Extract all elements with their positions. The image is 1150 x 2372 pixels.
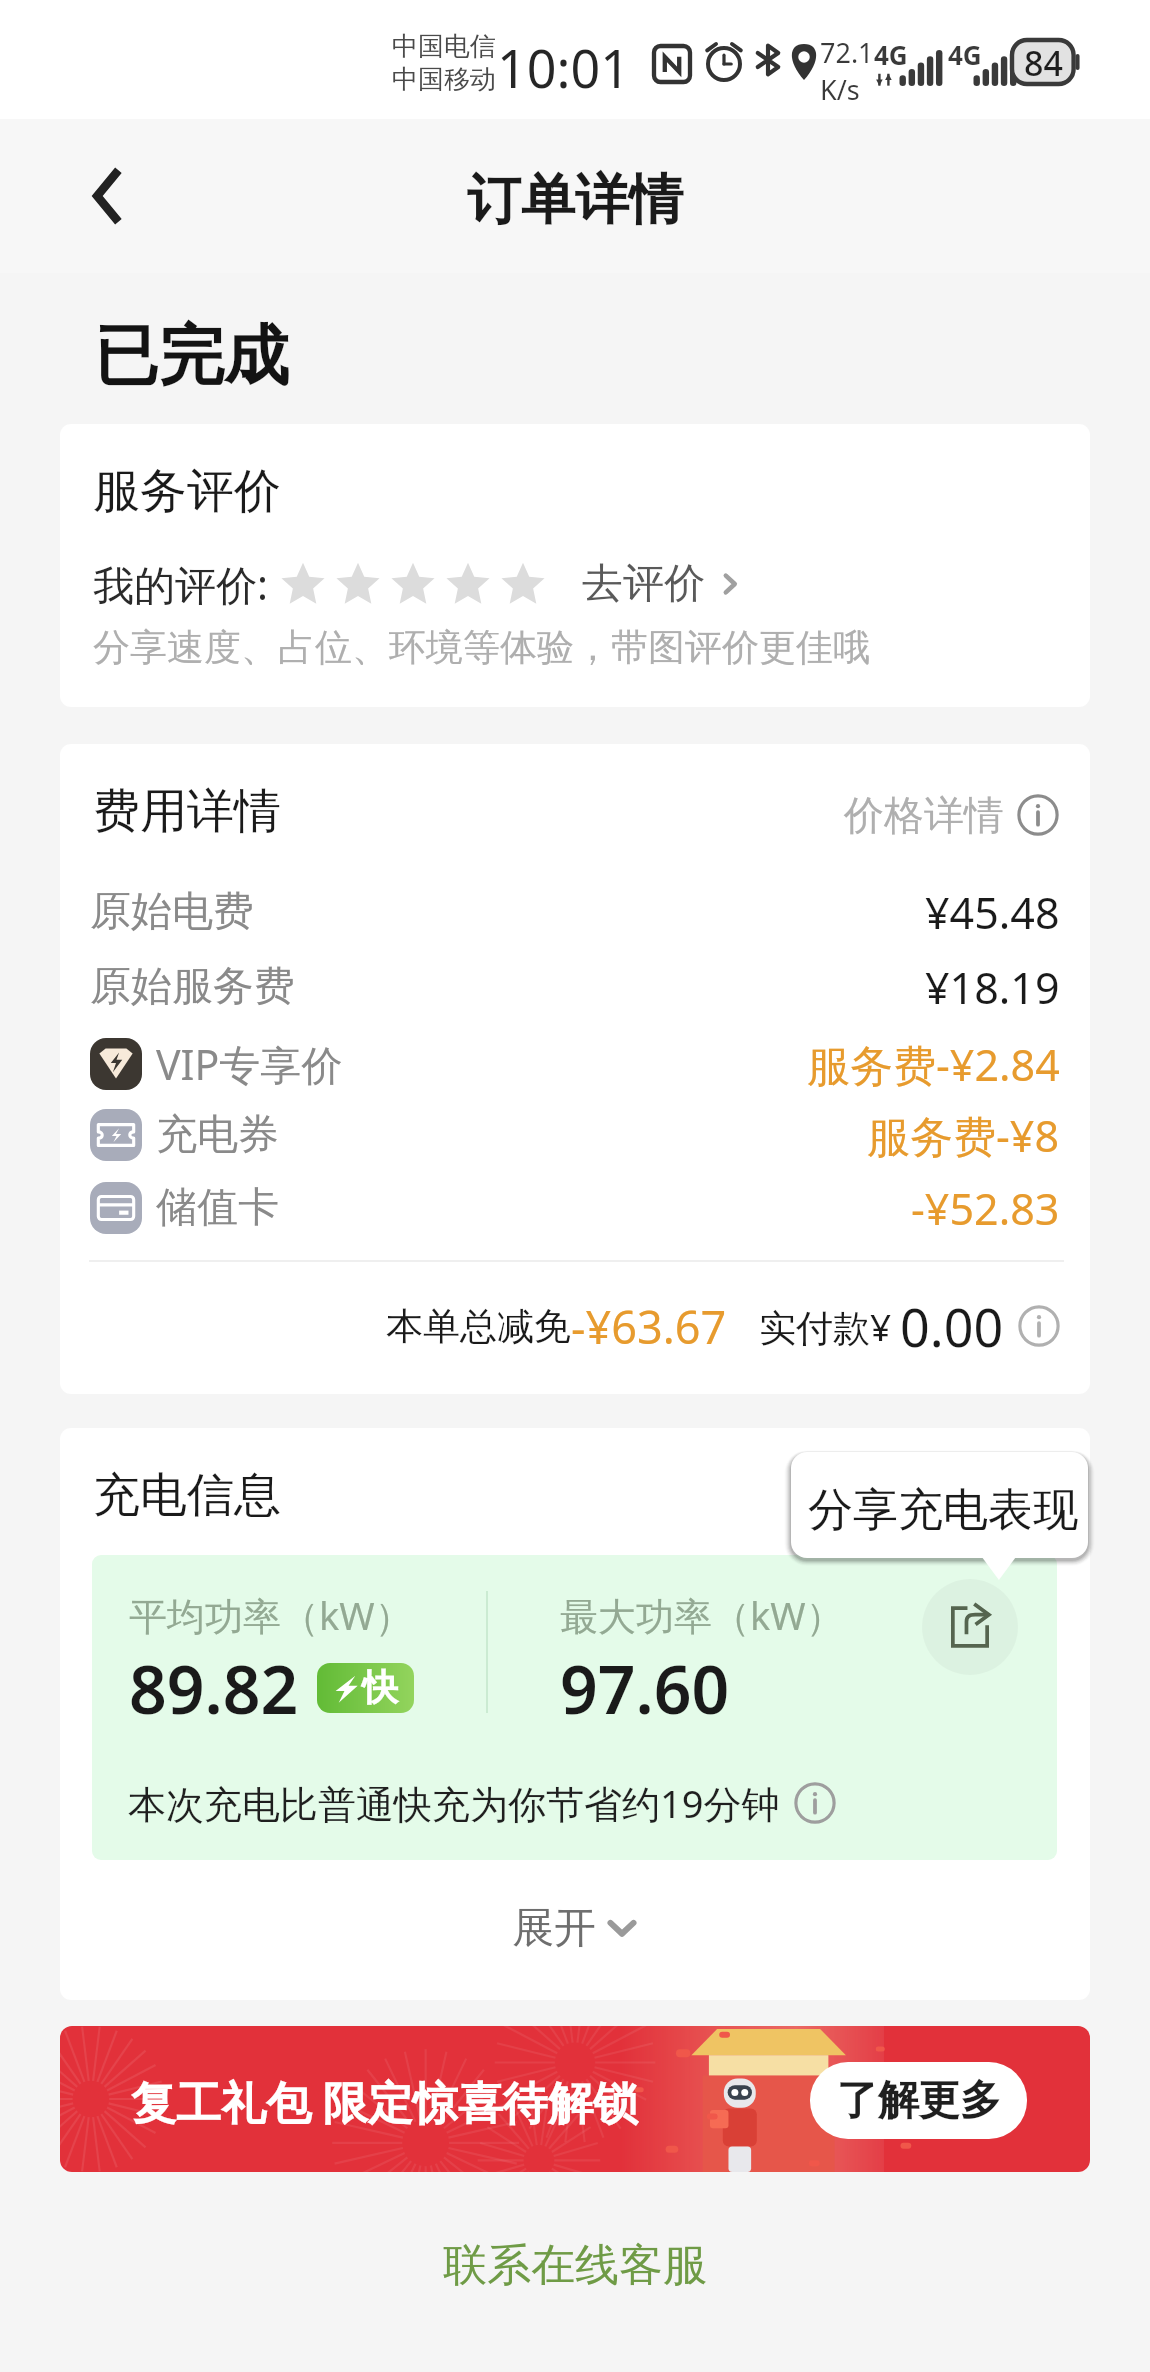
staticText: 服务评价 xyxy=(93,462,281,521)
staticText: 10:01 xyxy=(497,32,630,103)
staticText: 去评价 xyxy=(582,558,705,610)
staticText: 实付款¥ xyxy=(759,1301,892,1352)
button[interactable]: 联系在线客服 xyxy=(0,2238,1150,2293)
staticText: 充电券 xyxy=(156,1109,279,1161)
staticText: 4G xyxy=(874,37,908,72)
button[interactable]: 储值卡 xyxy=(60,1172,1090,1244)
staticText: 89.82 xyxy=(129,1643,299,1733)
staticText: 了解更多 xyxy=(837,2075,1001,2127)
staticText: 最大功率（kW） xyxy=(560,1589,844,1641)
button[interactable]: 展开 xyxy=(60,1900,1090,1956)
staticText: 分享充电表现 xyxy=(808,1482,1078,1539)
button[interactable]: 复工礼包 限定惊喜待解锁 xyxy=(60,2026,1090,2172)
staticText: 服务费-¥8 xyxy=(867,1106,1060,1165)
staticText: 储值卡 xyxy=(156,1182,279,1234)
button[interactable]: 充电券 xyxy=(60,1099,1090,1171)
staticText: ¥45.48 xyxy=(925,883,1060,942)
staticText: 97.60 xyxy=(560,1643,730,1733)
staticText: 服务费-¥2.84 xyxy=(807,1035,1060,1094)
button[interactable]: 本单总减免 xyxy=(60,1285,1090,1367)
button[interactable]: 原始服务费 xyxy=(60,951,1090,1023)
staticText: K/s xyxy=(820,71,860,108)
staticText: 本单总减免 xyxy=(386,1303,571,1350)
staticText: 我的评价: xyxy=(93,556,268,612)
staticText: 复工礼包 限定惊喜待解锁 xyxy=(131,2071,638,2132)
staticText: 订单详情 xyxy=(467,166,683,234)
staticText: 中国移动 xyxy=(392,63,496,96)
button[interactable]: Back xyxy=(73,161,143,231)
button[interactable]: 原始电费 xyxy=(60,876,1090,948)
staticText: -¥52.83 xyxy=(911,1179,1060,1238)
staticText: 快 xyxy=(362,1665,398,1710)
staticText: ¥18.19 xyxy=(925,958,1060,1017)
staticText: 中国电信 xyxy=(392,30,496,63)
staticText: 价格详情 xyxy=(844,790,1004,840)
staticText: 平均功率（kW） xyxy=(129,1589,413,1641)
staticText: 4G xyxy=(948,37,982,72)
staticText: 分享速度、占位、环境等体验，带图评价更佳哦 xyxy=(93,624,870,671)
staticText: 展开 xyxy=(512,1902,596,1955)
staticText: 充电信息 xyxy=(93,1466,281,1525)
staticText: 72.1 xyxy=(820,34,874,71)
staticText: 已完成 xyxy=(94,315,289,397)
staticText: 本次充电比普通快充为你节省约19分钟 xyxy=(128,1777,780,1829)
button[interactable]: VIP专享价 xyxy=(60,1028,1090,1100)
button[interactable]: 去评价 xyxy=(582,558,745,610)
staticText: 费用详情 xyxy=(93,782,281,841)
staticText: 84 xyxy=(1024,40,1063,84)
staticText: -¥63.67 xyxy=(571,1296,727,1357)
button[interactable]: 价格详情 xyxy=(844,790,1059,840)
button[interactable]: Share charging performance xyxy=(922,1579,1018,1675)
button[interactable]: Rate this service xyxy=(281,562,556,606)
staticText: 原始电费 xyxy=(90,886,254,938)
staticText: 0.00 xyxy=(900,1291,1004,1362)
staticText: VIP专享价 xyxy=(156,1036,343,1092)
staticText: 原始服务费 xyxy=(90,961,295,1013)
button[interactable]: 了解更多 xyxy=(810,2062,1027,2139)
